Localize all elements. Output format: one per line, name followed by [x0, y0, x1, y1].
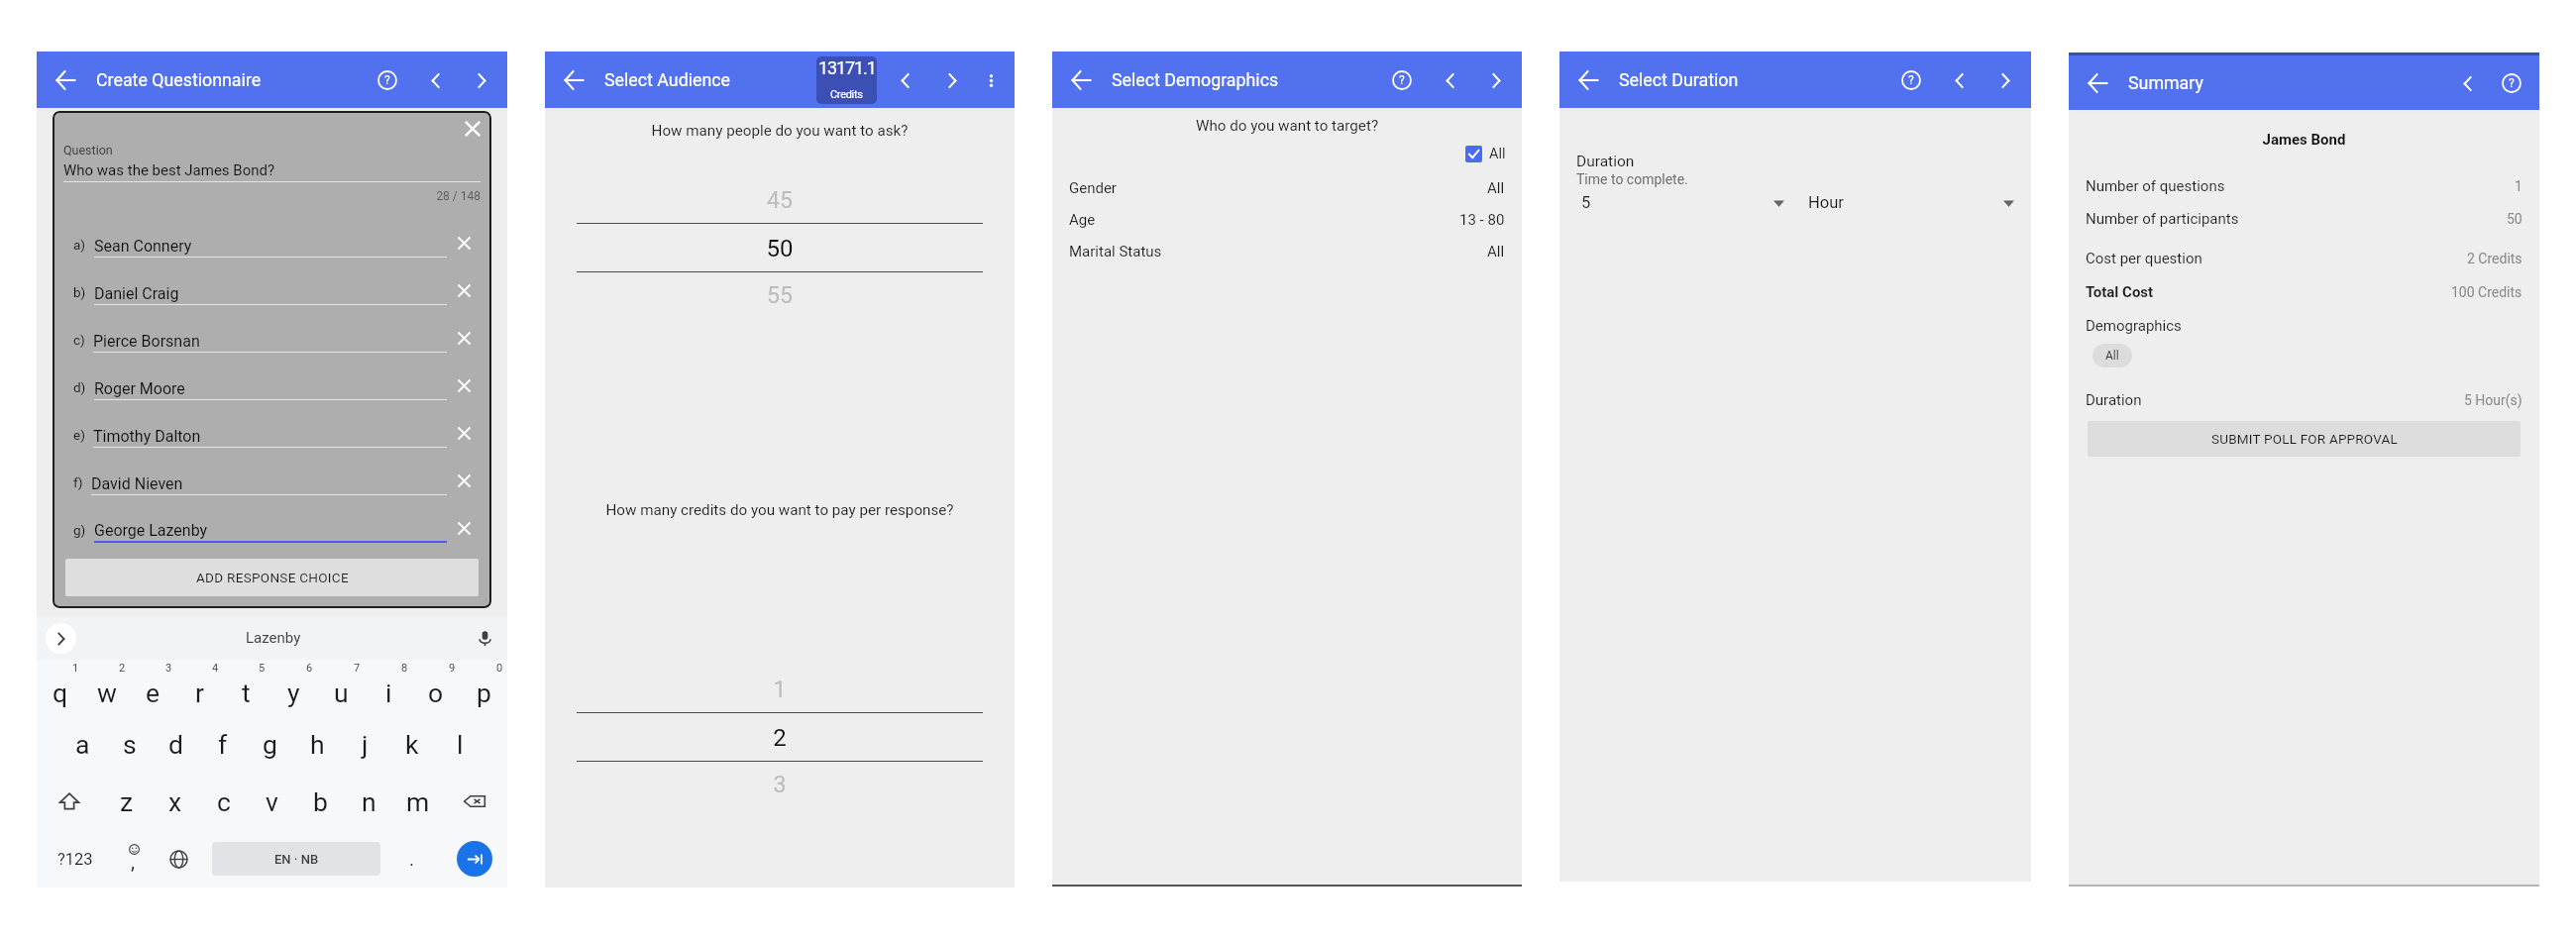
staticText: Who do you want to target?	[1052, 117, 1522, 135]
button[interactable]: d	[153, 716, 199, 773]
button[interactable]: v	[248, 773, 296, 830]
button[interactable]: 2	[83, 660, 130, 716]
button[interactable]: 9	[412, 660, 460, 716]
button[interactable]: 7	[317, 660, 365, 716]
button[interactable]: Change language	[153, 830, 204, 888]
button[interactable]: Previous	[892, 67, 917, 93]
button[interactable]: Remove choice	[451, 325, 477, 351]
button[interactable]: 4	[176, 660, 223, 716]
staticText: x	[168, 786, 182, 817]
button[interactable]: More options	[979, 68, 1003, 92]
staticText: Gender	[1069, 179, 1117, 197]
button[interactable]: EN · NB	[212, 842, 380, 876]
button[interactable]: Remove choice	[451, 420, 477, 446]
staticText: All	[1487, 243, 1505, 261]
button[interactable]: k	[388, 716, 436, 773]
button[interactable]: c)	[73, 318, 482, 366]
button[interactable]: Next	[468, 66, 495, 94]
button[interactable]: Remove choice	[451, 468, 477, 493]
staticText: Select Duration	[1619, 69, 1739, 90]
button[interactable]: 0	[460, 660, 507, 716]
button[interactable]: Remove question	[459, 115, 486, 143]
button[interactable]: All	[1052, 146, 1506, 162]
button[interactable]: 5	[223, 660, 269, 716]
button[interactable]: Previous	[1945, 66, 1973, 94]
button[interactable]: c	[199, 773, 248, 830]
button[interactable]: Remove choice	[451, 515, 477, 541]
button[interactable]: Hour	[1795, 193, 2014, 212]
button[interactable]: ?123	[37, 830, 113, 888]
button[interactable]: m	[393, 773, 442, 830]
staticText: b	[313, 786, 328, 817]
button[interactable]: Next	[939, 67, 965, 93]
button[interactable]: Remove choice	[451, 372, 477, 398]
button[interactable]: Enter	[441, 830, 507, 888]
button[interactable]: Help	[373, 65, 402, 95]
button[interactable]: All	[2093, 344, 2132, 367]
button[interactable]: Number of questions	[2086, 177, 2522, 195]
button[interactable]: 5	[1576, 193, 1795, 212]
button[interactable]: Back	[561, 65, 590, 95]
button[interactable]: Expand suggestions	[46, 623, 76, 654]
button[interactable]: l	[436, 716, 483, 773]
button[interactable]: Help	[1896, 65, 1926, 95]
button[interactable]: g)	[73, 508, 482, 556]
button[interactable]: 3	[130, 660, 176, 716]
button[interactable]: Back	[1068, 65, 1098, 95]
button[interactable]: Remove choice	[451, 277, 477, 303]
button[interactable]: e)	[73, 413, 482, 461]
button[interactable]: z	[102, 773, 151, 830]
staticText: 6	[306, 662, 313, 675]
button[interactable]: Help	[2497, 68, 2526, 98]
button[interactable]: Previous	[421, 66, 449, 94]
button[interactable]: s	[106, 716, 153, 773]
button[interactable]: Gender	[1069, 172, 1505, 204]
button[interactable]: n	[345, 773, 393, 830]
button[interactable]: Shift	[37, 773, 102, 830]
button[interactable]: Duration	[2086, 391, 2522, 409]
button[interactable]: SUBMIT POLL FOR APPROVAL	[2088, 421, 2521, 457]
staticText: b)	[73, 284, 86, 300]
button[interactable]: Next	[1482, 66, 1510, 94]
button[interactable]: Emoji	[113, 830, 153, 888]
button[interactable]: d)	[73, 366, 482, 413]
staticText: All	[1489, 146, 1506, 162]
staticText: h	[310, 729, 325, 760]
button[interactable]: .	[383, 830, 441, 888]
button[interactable]: f	[199, 716, 246, 773]
button[interactable]: Help	[1387, 65, 1417, 95]
button[interactable]: b)	[73, 270, 482, 318]
button[interactable]: a)	[73, 223, 482, 270]
button[interactable]: j	[341, 716, 388, 773]
staticText: 2	[577, 724, 983, 752]
button[interactable]: Next	[1991, 66, 2019, 94]
button[interactable]: Back	[53, 65, 82, 95]
button[interactable]: Age	[1069, 204, 1505, 236]
button[interactable]: Previous	[1436, 66, 1463, 94]
button[interactable]: h	[293, 716, 341, 773]
button[interactable]: Back	[1575, 65, 1605, 95]
staticText: Duration	[2086, 391, 2142, 409]
button[interactable]: Credits balance	[816, 56, 877, 104]
button[interactable]: Back	[2085, 68, 2114, 98]
button[interactable]: Marital Status	[1069, 236, 1505, 267]
button[interactable]: g	[246, 716, 293, 773]
staticText: ?123	[57, 850, 93, 869]
staticText: Lazenby	[246, 629, 301, 647]
button[interactable]: Number of participants	[2086, 210, 2522, 228]
button[interactable]: Voice input	[471, 624, 498, 652]
button[interactable]: 8	[365, 660, 412, 716]
button[interactable]: ADD RESPONSE CHOICE	[65, 559, 479, 596]
button[interactable]: f)	[73, 461, 482, 508]
button[interactable]: b	[296, 773, 345, 830]
button[interactable]: Backspace	[442, 773, 507, 830]
button[interactable]: x	[151, 773, 199, 830]
button[interactable]: 6	[269, 660, 317, 716]
button[interactable]: 1	[37, 660, 83, 716]
staticText: Cost per question	[2086, 250, 2202, 267]
button[interactable]: Cost per question	[2086, 250, 2522, 267]
button[interactable]: Total Cost	[2086, 283, 2522, 301]
button[interactable]: a	[59, 716, 106, 773]
button[interactable]: Remove choice	[451, 230, 477, 256]
button[interactable]: Previous	[2454, 70, 2480, 96]
